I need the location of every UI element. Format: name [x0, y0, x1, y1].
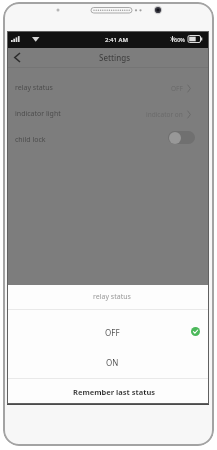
button[interactable]: child lock	[15, 127, 191, 153]
staticText: relay status	[15, 83, 53, 93]
staticText: ON	[106, 357, 119, 368]
button[interactable]: relay status	[11, 288, 213, 305]
button[interactable]: Remember last status	[13, 379, 215, 404]
staticText: Settings	[99, 52, 131, 63]
button[interactable]: OFF	[11, 317, 213, 348]
button[interactable]: ON	[11, 347, 213, 378]
staticText: 60%	[174, 36, 185, 43]
staticText: Remember last status	[73, 387, 156, 397]
staticText: child lock	[15, 135, 46, 145]
staticText: indicator light	[15, 109, 61, 119]
button[interactable]	[9, 49, 25, 66]
staticText: indicator on	[146, 110, 183, 119]
staticText: 2:41 AM	[105, 36, 128, 44]
button[interactable]: indicator light	[15, 101, 191, 127]
button[interactable]: relay status	[15, 75, 191, 101]
staticText: relay status	[93, 292, 131, 302]
staticText: OFF	[171, 84, 183, 93]
staticText: OFF	[105, 327, 120, 338]
